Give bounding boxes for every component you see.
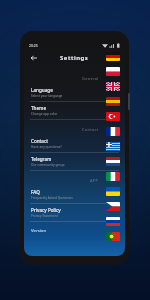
- staticText: Contact: [31, 138, 49, 144]
- button[interactable]: Language flag: [100, 94, 126, 109]
- button[interactable]: Back: [27, 51, 41, 65]
- button[interactable]: Language flag: [100, 139, 126, 154]
- button[interactable]: Language flag: [100, 154, 126, 169]
- staticText: Settings: [60, 54, 89, 62]
- staticText: 20:25: [29, 43, 38, 48]
- staticText: Frequently Asked Questions: [31, 196, 73, 200]
- button[interactable]: Contact: [24, 135, 125, 153]
- button[interactable]: Language flag: [100, 184, 126, 199]
- staticText: Language: [31, 87, 53, 93]
- staticText: Select your language: [31, 94, 63, 98]
- staticText: FAQ: [31, 189, 40, 195]
- staticText: Our community group: [31, 163, 65, 167]
- button[interactable]: Telegram: [24, 153, 125, 171]
- button[interactable]: Privacy Policy: [24, 204, 125, 222]
- staticText: Privacy Policy: [31, 207, 61, 213]
- staticText: Change app color: [31, 112, 58, 116]
- button[interactable]: Language: [24, 84, 125, 102]
- staticText: APP: [90, 178, 99, 183]
- button[interactable]: Language flag: [100, 214, 126, 229]
- staticText: General: [82, 76, 99, 81]
- staticText: Contact: [82, 127, 99, 132]
- button[interactable]: Version: [24, 225, 125, 237]
- button[interactable]: Language flag: [100, 64, 126, 79]
- staticText: Theme: [31, 105, 47, 111]
- staticText: Privacy Statement: [31, 214, 58, 218]
- staticText: Have any questions?: [31, 145, 62, 149]
- button[interactable]: FAQ: [24, 186, 125, 204]
- staticText: Version: [31, 228, 47, 234]
- button[interactable]: Language flag: [100, 169, 126, 184]
- button[interactable]: Language flag: [100, 109, 126, 124]
- staticText: Telegram: [31, 156, 52, 162]
- button[interactable]: Language flag: [100, 124, 126, 139]
- button[interactable]: Language flag: [100, 79, 126, 94]
- button[interactable]: Theme: [24, 102, 125, 120]
- button[interactable]: Language flag: [100, 49, 126, 64]
- button[interactable]: Language flag: [100, 229, 126, 244]
- button[interactable]: Language flag: [100, 199, 126, 214]
